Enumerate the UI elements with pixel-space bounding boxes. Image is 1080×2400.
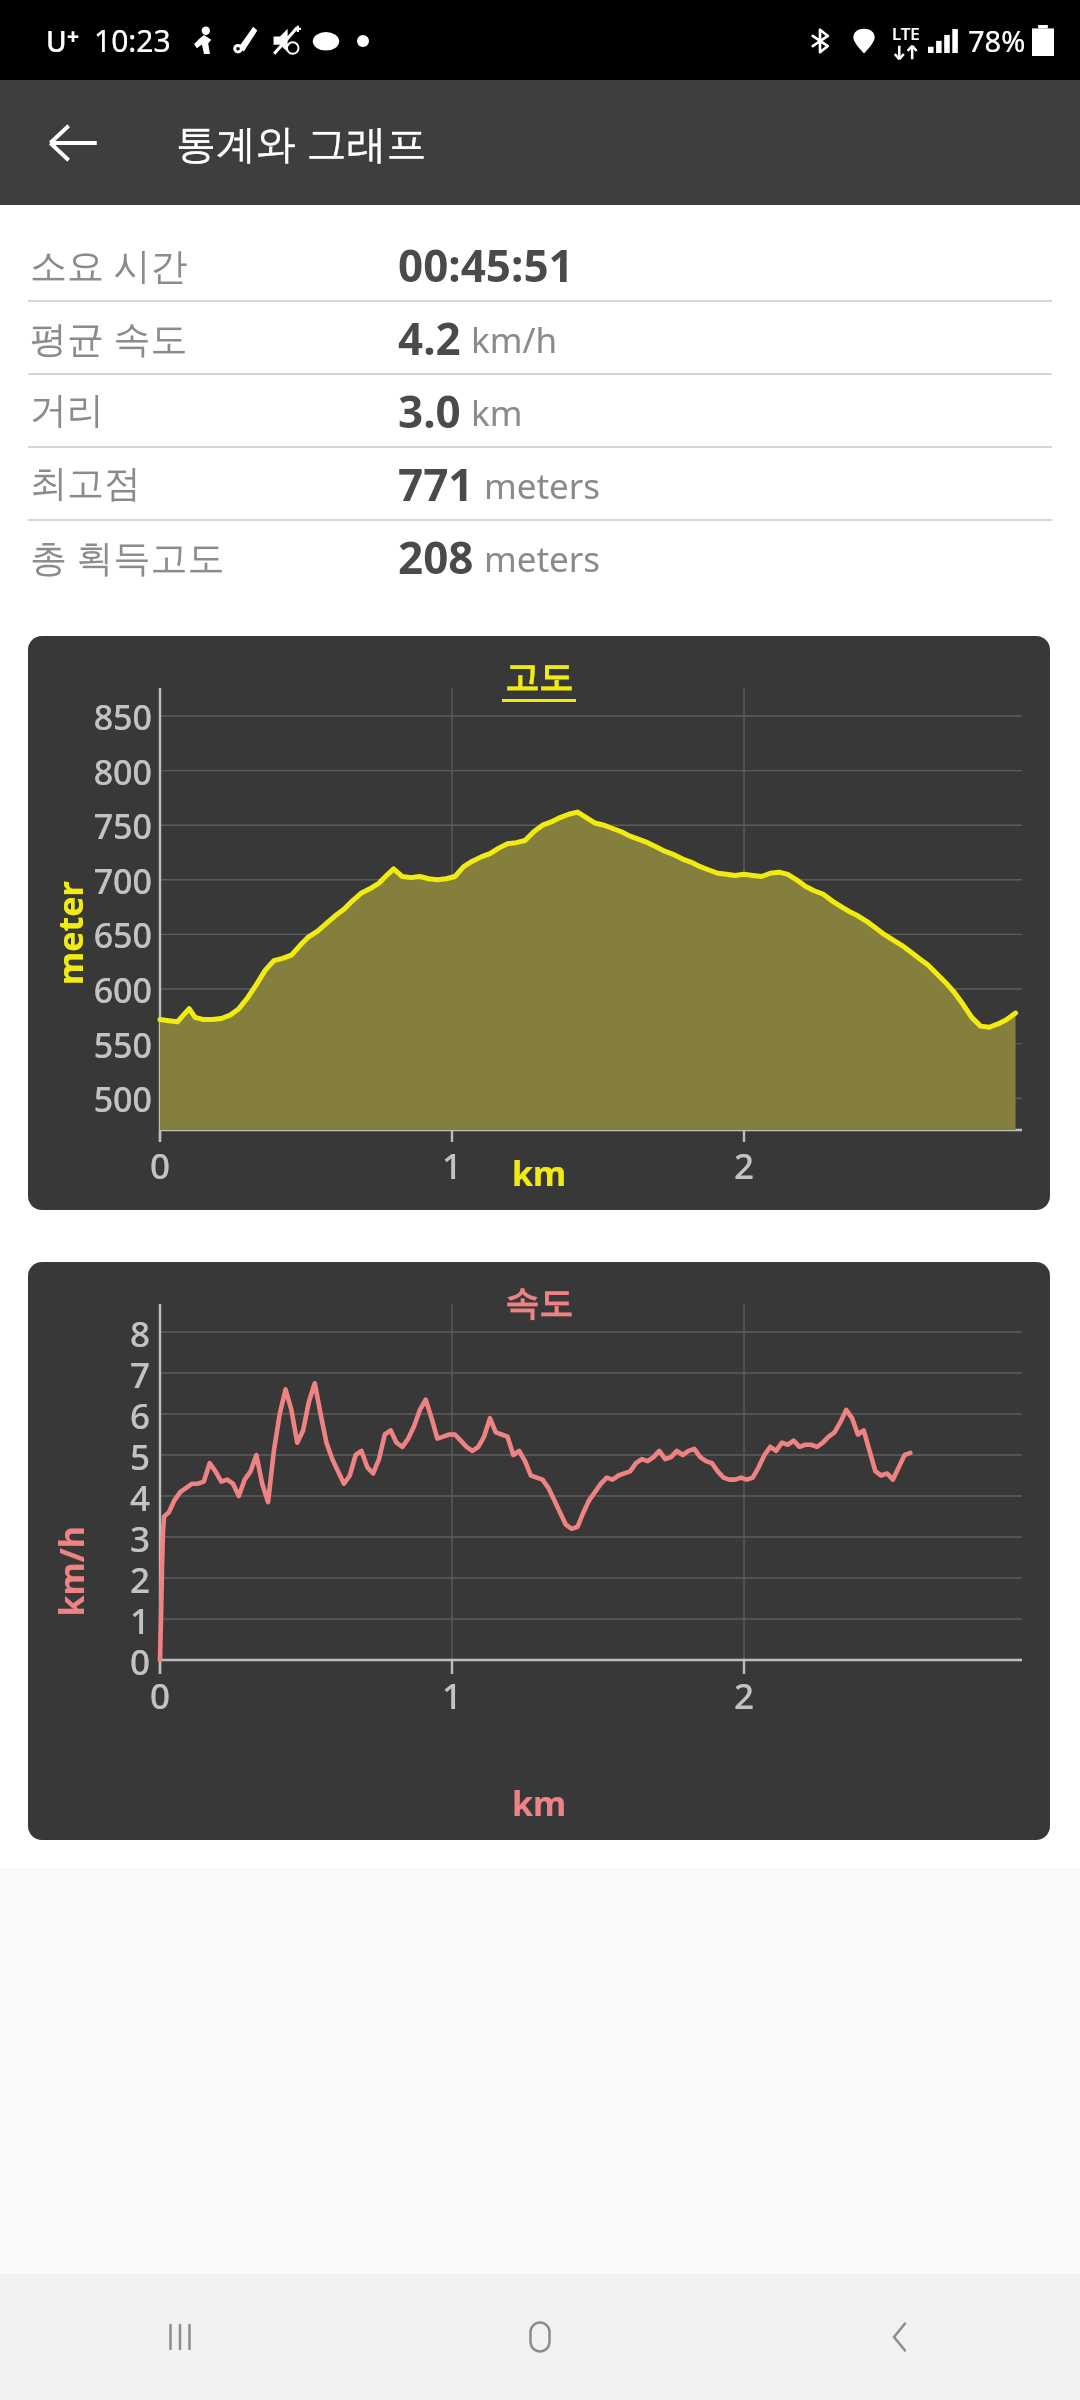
staticText: km (512, 1150, 567, 1196)
button[interactable]: Back (720, 2274, 1080, 2400)
staticText: 6 (72, 1392, 150, 1440)
staticText: + (67, 22, 80, 51)
staticText: LTE (892, 22, 920, 45)
staticText: 2 (72, 1556, 150, 1604)
staticText: 소요 시간 (30, 239, 398, 290)
staticText: 850 (58, 694, 152, 740)
staticText: 최고점 (30, 460, 398, 507)
staticText: 4 (72, 1474, 150, 1522)
staticText: 10:23 (94, 20, 171, 61)
staticText: 평균 속도 (30, 312, 398, 363)
staticText: 00:45:51 (398, 235, 574, 295)
staticText: 771 (398, 454, 474, 514)
staticText: 통계와 그래프 (176, 115, 427, 170)
button[interactable]: 평균 속도 (0, 302, 1080, 375)
staticText: 208 (398, 527, 474, 587)
staticText: meters (484, 462, 601, 510)
staticText: 거리 (30, 387, 398, 434)
staticText: 3 (72, 1515, 150, 1563)
staticText: km (471, 389, 523, 437)
button[interactable]: Back (26, 96, 120, 190)
button[interactable]: Home (360, 2274, 720, 2400)
staticText: 고도 (505, 656, 573, 699)
staticText: 78% (968, 21, 1026, 60)
button[interactable]: 850 (28, 636, 1050, 1210)
staticText: 0 (72, 1638, 150, 1686)
staticText: 총 획득고도 (30, 531, 398, 582)
staticText: 2 (714, 1672, 774, 1720)
button[interactable]: 소요 시간 (0, 229, 1080, 302)
staticText: 550 (58, 1022, 152, 1068)
staticText: 1 (72, 1597, 150, 1645)
staticText: 800 (58, 749, 152, 795)
staticText: km (512, 1780, 567, 1826)
staticText: 7 (72, 1351, 150, 1399)
staticText: 500 (58, 1076, 152, 1122)
button[interactable]: 거리 (0, 375, 1080, 448)
staticText: 5 (72, 1433, 150, 1481)
button[interactable]: 총 획득고도 (0, 521, 1080, 592)
staticText: km/h (471, 316, 558, 364)
staticText: 속도 (505, 1282, 573, 1325)
staticText: U (46, 22, 67, 60)
staticText: 2 (714, 1142, 774, 1190)
staticText: 700 (58, 858, 152, 904)
staticText: km/h (47, 1525, 93, 1616)
staticText: 600 (58, 967, 152, 1013)
staticText: 0 (130, 1142, 190, 1190)
button[interactable]: 8 (28, 1262, 1050, 1840)
staticText: meter (47, 881, 93, 985)
button[interactable]: Recent apps (0, 2274, 360, 2400)
staticText: 1 (422, 1672, 482, 1720)
staticText: 3.0 (398, 381, 461, 441)
staticText: 650 (58, 912, 152, 958)
staticText: 750 (58, 803, 152, 849)
staticText: 8 (72, 1310, 150, 1358)
button[interactable]: 최고점 (0, 448, 1080, 521)
staticText: 0 (130, 1672, 190, 1720)
staticText: 1 (422, 1142, 482, 1190)
staticText: 4.2 (398, 308, 461, 368)
staticText: meters (484, 535, 601, 583)
